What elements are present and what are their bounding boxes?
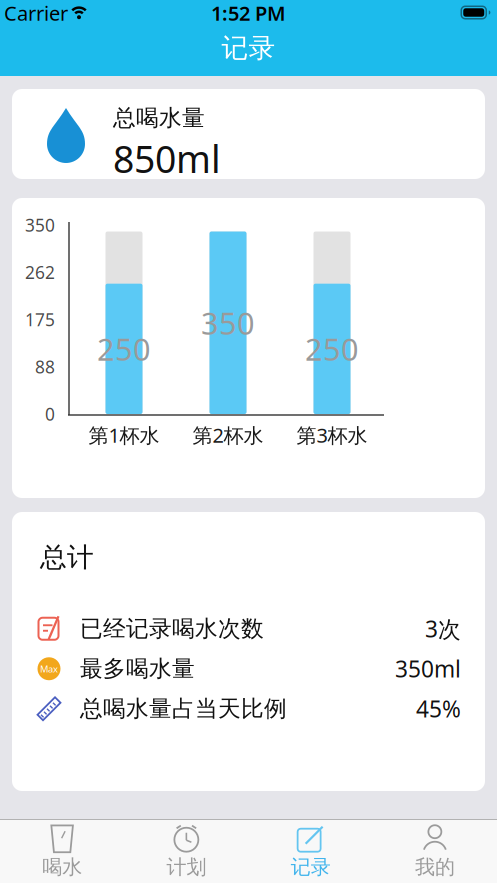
- staticText: 第2杯水: [192, 422, 263, 448]
- staticText: 3次: [425, 614, 461, 644]
- staticText: 记录: [291, 855, 331, 879]
- staticText: 350ml: [395, 654, 461, 684]
- staticText: 总喝水量占当天比例: [80, 695, 287, 723]
- staticText: 记录: [221, 32, 275, 64]
- staticText: 总喝水量: [113, 104, 205, 132]
- staticText: Max: [40, 663, 58, 675]
- button[interactable]: 计划: [124, 819, 248, 883]
- staticText: 88: [35, 355, 55, 378]
- staticText: 第1杯水: [88, 422, 159, 448]
- button[interactable]: 喝水: [0, 819, 124, 883]
- staticText: Carrier: [4, 0, 68, 26]
- staticText: 第3杯水: [296, 422, 367, 448]
- button[interactable]: 我的: [373, 819, 497, 883]
- button[interactable]: 记录: [248, 819, 373, 883]
- staticText: 250: [97, 328, 151, 369]
- staticText: 已经记录喝水次数: [80, 615, 264, 643]
- staticText: 350: [201, 302, 255, 343]
- staticText: 计划: [166, 855, 206, 879]
- staticText: 250: [305, 328, 359, 369]
- staticText: 喝水: [42, 855, 82, 879]
- staticText: 45%: [416, 694, 461, 724]
- staticText: 1:52 PM: [211, 0, 286, 26]
- staticText: 最多喝水量: [80, 655, 195, 683]
- staticText: 850ml: [113, 134, 221, 183]
- staticText: 175: [25, 308, 55, 331]
- staticText: 我的: [415, 855, 455, 879]
- staticText: 0: [45, 402, 55, 425]
- staticText: 350: [25, 213, 55, 236]
- staticText: 262: [25, 261, 55, 284]
- staticText: 总计: [40, 541, 94, 574]
